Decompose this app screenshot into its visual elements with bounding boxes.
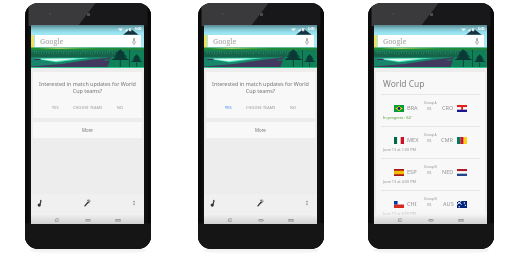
button[interactable]: Interested in match updates for World Cu… — [33, 72, 142, 118]
staticText: June 13 at 6:00 PM — [383, 211, 416, 216]
staticText: NO — [117, 105, 123, 110]
staticText: CMR — [441, 136, 454, 144]
button[interactable]: Group A — [376, 127, 485, 158]
other: Voice search — [132, 38, 136, 45]
staticText: AUS — [443, 200, 454, 208]
button[interactable]: Customize Google Now — [83, 199, 91, 207]
staticText: Group A — [424, 100, 437, 104]
other: Home — [426, 217, 436, 223]
staticText: Group B — [424, 196, 437, 200]
staticText: 6:00 — [135, 27, 142, 31]
staticText: vs — [427, 201, 432, 207]
button[interactable]: NO — [113, 103, 127, 112]
staticText: CHOOSE TEAMS — [246, 105, 276, 110]
staticText: More — [255, 127, 266, 133]
staticText: Google — [383, 36, 407, 46]
staticText: 6:00 — [478, 27, 485, 31]
staticText: vs — [427, 137, 432, 143]
staticText: 6:00 — [308, 27, 315, 31]
button[interactable]: Reminders — [36, 199, 44, 207]
button[interactable]: YES — [221, 103, 236, 112]
other: Back — [395, 217, 405, 223]
staticText: Google — [40, 36, 64, 46]
staticText: In progress · 64' — [383, 115, 412, 120]
staticText: BRA — [407, 104, 418, 112]
staticText: CHI — [407, 200, 417, 208]
staticText: NED — [442, 168, 454, 176]
button[interactable]: Google — [208, 35, 314, 47]
staticText: CHOOSE TEAMS — [73, 105, 103, 110]
staticText: More — [82, 127, 93, 133]
button[interactable]: Google — [35, 35, 141, 47]
staticText: June 13 at 1:00 PM — [383, 147, 416, 152]
other: Voice search — [475, 38, 479, 45]
other: Back — [225, 217, 235, 223]
button[interactable]: Group B — [376, 191, 485, 222]
staticText: CRO — [442, 104, 454, 112]
staticText: MEX — [407, 136, 419, 144]
other: Voice search — [305, 38, 309, 45]
button[interactable]: CHOOSE TEAMS — [69, 103, 107, 112]
staticText: World Cup — [383, 78, 425, 89]
staticText: Google — [213, 36, 237, 46]
staticText: June 13 at 4:00 PM — [383, 179, 416, 184]
other: Home — [83, 217, 93, 223]
button[interactable]: CHOOSE TEAMS — [242, 103, 280, 112]
staticText: vs — [427, 105, 432, 111]
staticText: NO — [290, 105, 296, 110]
staticText: ESP — [407, 168, 417, 176]
button[interactable]: More options — [303, 199, 311, 207]
button[interactable]: Customize Google Now — [256, 199, 264, 207]
staticText: YES — [52, 105, 59, 110]
staticText: Interested in match updates for World Cu… — [39, 80, 136, 94]
other: Recents — [113, 217, 123, 223]
button[interactable]: Interested in match updates for World Cu… — [206, 72, 315, 118]
staticText: Group A — [424, 132, 437, 136]
button[interactable]: More — [206, 122, 315, 138]
button[interactable]: NO — [286, 103, 300, 112]
button[interactable]: Google — [378, 35, 484, 47]
button[interactable]: Reminders — [209, 199, 217, 207]
other: Back — [52, 217, 62, 223]
button[interactable]: Group A — [376, 95, 485, 126]
other: Recents — [456, 217, 466, 223]
other: Home — [256, 217, 266, 223]
button[interactable]: YES — [48, 103, 63, 112]
staticText: vs — [427, 169, 432, 175]
other: Recents — [286, 217, 296, 223]
staticText: Group B — [424, 164, 437, 168]
button[interactable]: Group B — [376, 159, 485, 190]
staticText: Interested in match updates for World Cu… — [212, 80, 309, 94]
staticText: YES — [225, 105, 232, 110]
button[interactable]: More — [33, 122, 142, 138]
button[interactable]: More options — [130, 199, 138, 207]
